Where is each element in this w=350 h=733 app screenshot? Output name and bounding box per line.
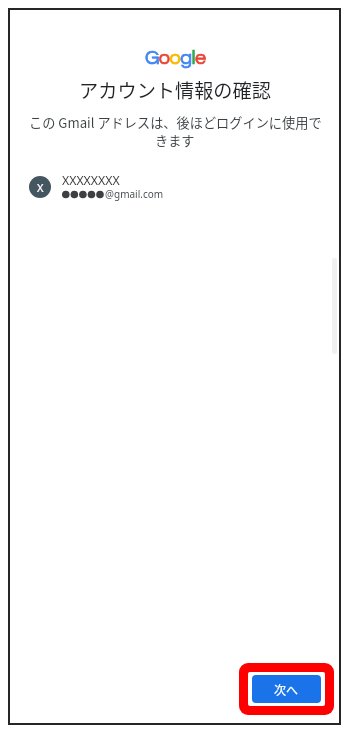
button[interactable]: X [0,171,350,203]
staticText: XXXXXXXX [62,172,120,189]
button[interactable]: 次へ [252,675,321,703]
staticText: 次へ [274,681,299,698]
staticText: @gmail.com [105,187,164,201]
staticText: この Gmail アドレスは、後ほどログインに使用で [29,113,322,132]
staticText: X [37,180,44,195]
staticText: Google [145,48,206,69]
staticText: Google [145,48,206,69]
staticText: きます [155,131,195,150]
staticText: アカウント情報の確認 [79,76,271,104]
